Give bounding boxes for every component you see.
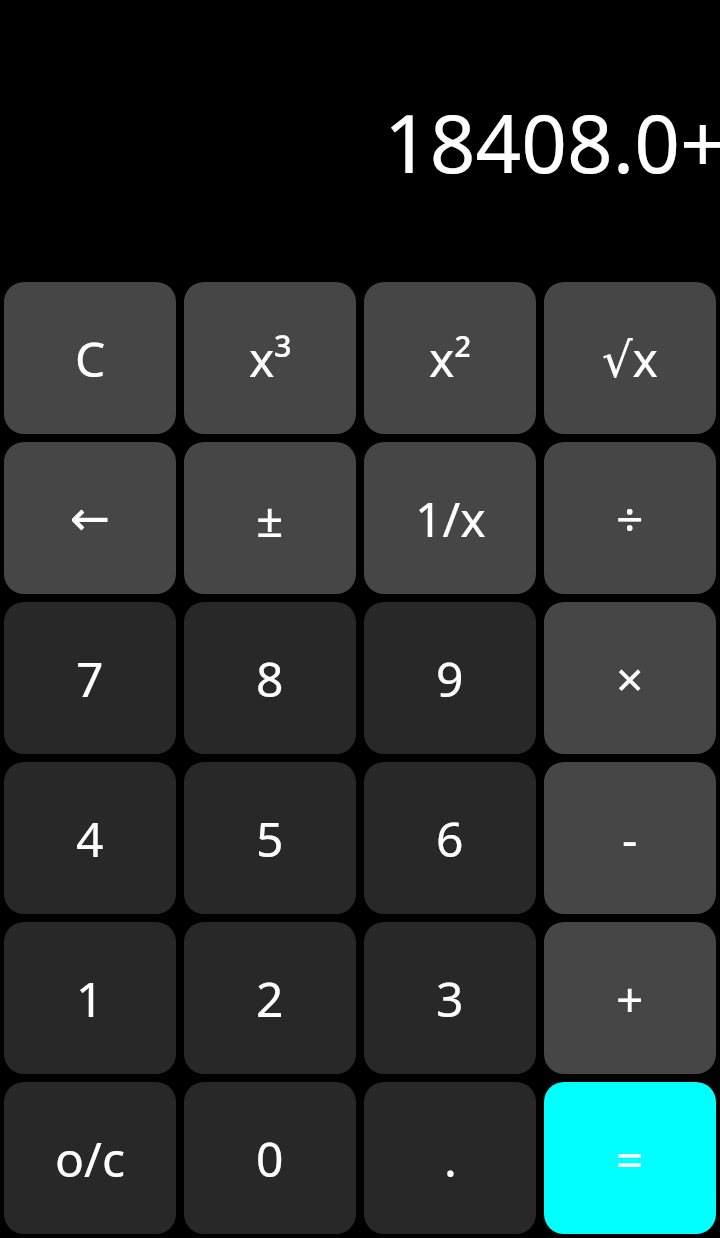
button[interactable]: × xyxy=(544,602,716,754)
staticText: × xyxy=(616,646,644,711)
staticText: x³ xyxy=(249,326,292,391)
staticText: - xyxy=(622,806,638,871)
button[interactable]: ÷ xyxy=(544,442,716,594)
staticText: 1/x xyxy=(415,486,486,551)
button[interactable]: x³ xyxy=(184,282,356,434)
staticText: 5 xyxy=(256,806,284,871)
staticText: 1 xyxy=(76,966,104,1031)
staticText: + xyxy=(616,966,644,1031)
staticText: 2 xyxy=(256,966,284,1031)
staticText: 7 xyxy=(76,646,104,711)
button[interactable]: . xyxy=(364,1082,536,1234)
staticText: 18408.0+ xyxy=(384,87,720,196)
staticText: 3 xyxy=(436,966,464,1031)
button[interactable]: 7 xyxy=(4,602,176,754)
button[interactable]: 2 xyxy=(184,922,356,1074)
button[interactable]: 4 xyxy=(4,762,176,914)
staticText: o/c xyxy=(55,1126,125,1191)
button[interactable]: 0 xyxy=(184,1082,356,1234)
staticText: 8 xyxy=(256,646,284,711)
button[interactable]: 6 xyxy=(364,762,536,914)
button[interactable]: o/c xyxy=(4,1082,176,1234)
button[interactable]: x² xyxy=(364,282,536,434)
button[interactable]: ← xyxy=(4,442,176,594)
staticText: . xyxy=(444,1126,457,1191)
staticText: = xyxy=(616,1126,644,1191)
staticText: C xyxy=(75,326,106,391)
button[interactable]: + xyxy=(544,922,716,1074)
button[interactable]: 5 xyxy=(184,762,356,914)
button[interactable]: - xyxy=(544,762,716,914)
staticText: ± xyxy=(256,486,284,551)
staticText: √x xyxy=(602,326,658,391)
button[interactable]: C xyxy=(4,282,176,434)
staticText: ← xyxy=(70,490,111,546)
staticText: 0 xyxy=(256,1126,284,1191)
button[interactable]: ± xyxy=(184,442,356,594)
button[interactable]: 3 xyxy=(364,922,536,1074)
staticText: x² xyxy=(429,326,472,391)
button[interactable]: 8 xyxy=(184,602,356,754)
staticText: ÷ xyxy=(616,486,644,551)
staticText: 4 xyxy=(76,806,104,871)
staticText: 9 xyxy=(436,646,464,711)
button[interactable]: √x xyxy=(544,282,716,434)
button[interactable]: 1 xyxy=(4,922,176,1074)
button[interactable]: 9 xyxy=(364,602,536,754)
button[interactable]: = xyxy=(544,1082,716,1234)
button[interactable]: 1/x xyxy=(364,442,536,594)
staticText: 6 xyxy=(436,806,464,871)
